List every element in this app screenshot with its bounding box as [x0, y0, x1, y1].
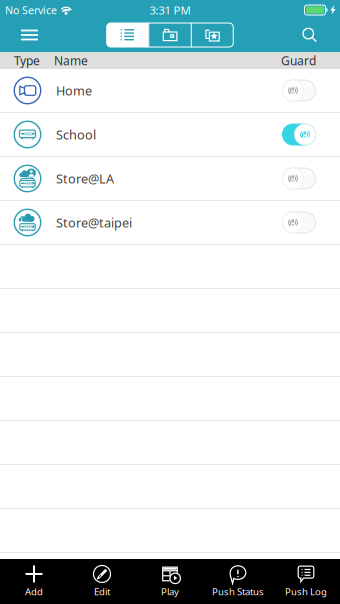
button[interactable]: Home	[0, 69, 340, 113]
button[interactable]: Add	[0, 559, 68, 604]
staticText: Push Status	[212, 585, 264, 598]
button[interactable]: Guard	[277, 119, 321, 149]
staticText: Guard	[281, 52, 316, 69]
button[interactable]: School	[0, 113, 340, 157]
staticText: Add	[25, 585, 43, 598]
staticText: Edit	[94, 585, 110, 598]
button[interactable]: Edit	[68, 559, 136, 604]
staticText: No Service	[5, 3, 57, 17]
button[interactable]: Search	[286, 20, 340, 50]
button[interactable]: Guard	[277, 207, 321, 237]
button[interactable]: Store@LA	[0, 157, 340, 201]
button[interactable]: Guard	[277, 75, 321, 105]
button[interactable]: Push Log	[272, 559, 340, 604]
staticText: 3:31 PM	[149, 2, 190, 18]
button[interactable]: Guard	[277, 163, 321, 193]
button[interactable]: Play	[136, 559, 204, 604]
staticText: Home	[56, 82, 92, 99]
staticText: Store@LA	[56, 170, 114, 187]
staticText: Push Log	[285, 585, 327, 598]
staticText: Type	[14, 52, 40, 69]
button[interactable]: Folders	[149, 23, 191, 47]
button[interactable]: Store@taipei	[0, 201, 340, 245]
staticText: Store@taipei	[56, 214, 132, 231]
staticText: Name	[54, 52, 88, 69]
button[interactable]: Menu	[0, 20, 54, 50]
button[interactable]: List view	[107, 23, 148, 47]
button[interactable]: Favorites	[192, 23, 233, 47]
button[interactable]: Push Status	[204, 559, 272, 604]
staticText: School	[56, 126, 96, 143]
staticText: Play	[161, 585, 179, 598]
